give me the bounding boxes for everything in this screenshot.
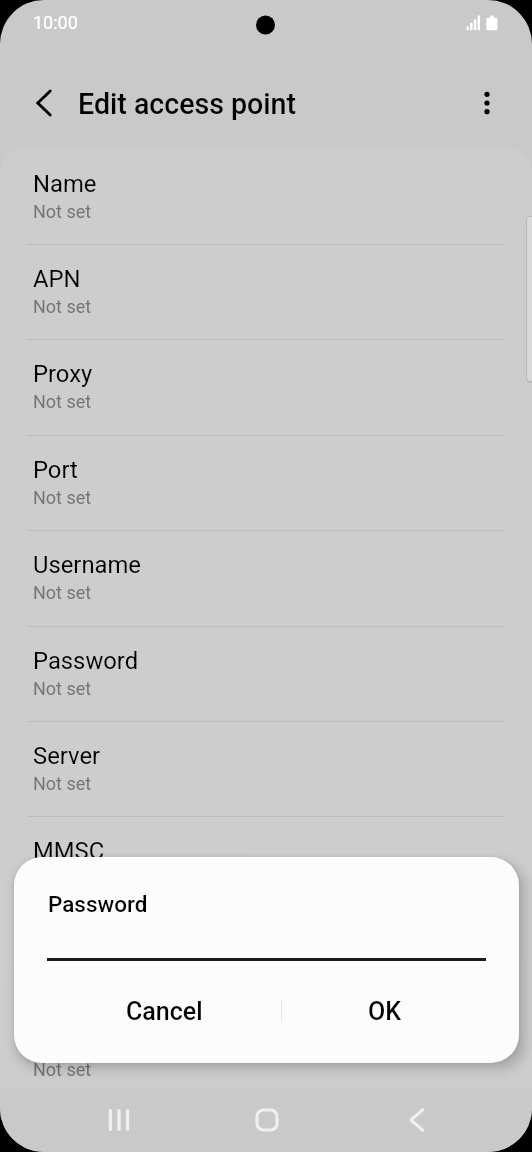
staticText: Edit access point <box>78 87 297 121</box>
staticText: Not set <box>33 201 92 222</box>
staticText: Not set <box>33 391 92 412</box>
button[interactable]: MMS proxy <box>0 912 532 1007</box>
staticText: Password <box>48 891 148 917</box>
button[interactable]: Recent apps <box>89 1088 149 1152</box>
staticText: Not set <box>33 773 92 794</box>
button[interactable]: Port <box>0 435 532 530</box>
button[interactable]: Name <box>0 149 532 244</box>
staticText: Name <box>33 170 97 198</box>
staticText: Cancel <box>126 997 203 1026</box>
button[interactable]: Navigate up <box>15 74 73 132</box>
staticText: Not set <box>33 487 92 508</box>
button[interactable]: Back <box>387 1088 447 1152</box>
button[interactable]: Home <box>237 1088 297 1152</box>
staticText: Server <box>33 742 101 770</box>
button[interactable]: APN <box>0 244 532 339</box>
button[interactable]: Username <box>0 530 532 625</box>
button[interactable]: MMS port <box>0 1007 532 1089</box>
staticText: MMSC <box>33 837 105 865</box>
button[interactable]: Proxy <box>0 339 532 434</box>
button[interactable]: OK <box>299 988 471 1034</box>
staticText: Password <box>33 647 139 675</box>
staticText: Not set <box>33 296 92 317</box>
button[interactable]: MMSC <box>0 816 532 911</box>
button[interactable]: Password <box>0 626 532 721</box>
button[interactable]: Server <box>0 721 532 816</box>
staticText: OK <box>368 997 402 1026</box>
button[interactable]: More options <box>458 74 516 132</box>
staticText: 10:00 <box>33 12 78 33</box>
staticText: APN <box>33 265 81 293</box>
button[interactable]: Cancel <box>30 988 299 1034</box>
staticText: Not set <box>33 1059 92 1080</box>
staticText: Not set <box>33 582 92 603</box>
staticText: Username <box>33 551 141 579</box>
staticText: Not set <box>33 678 92 699</box>
staticText: MMS proxy <box>33 933 153 961</box>
staticText: Port <box>33 456 78 484</box>
staticText: Proxy <box>33 360 93 388</box>
